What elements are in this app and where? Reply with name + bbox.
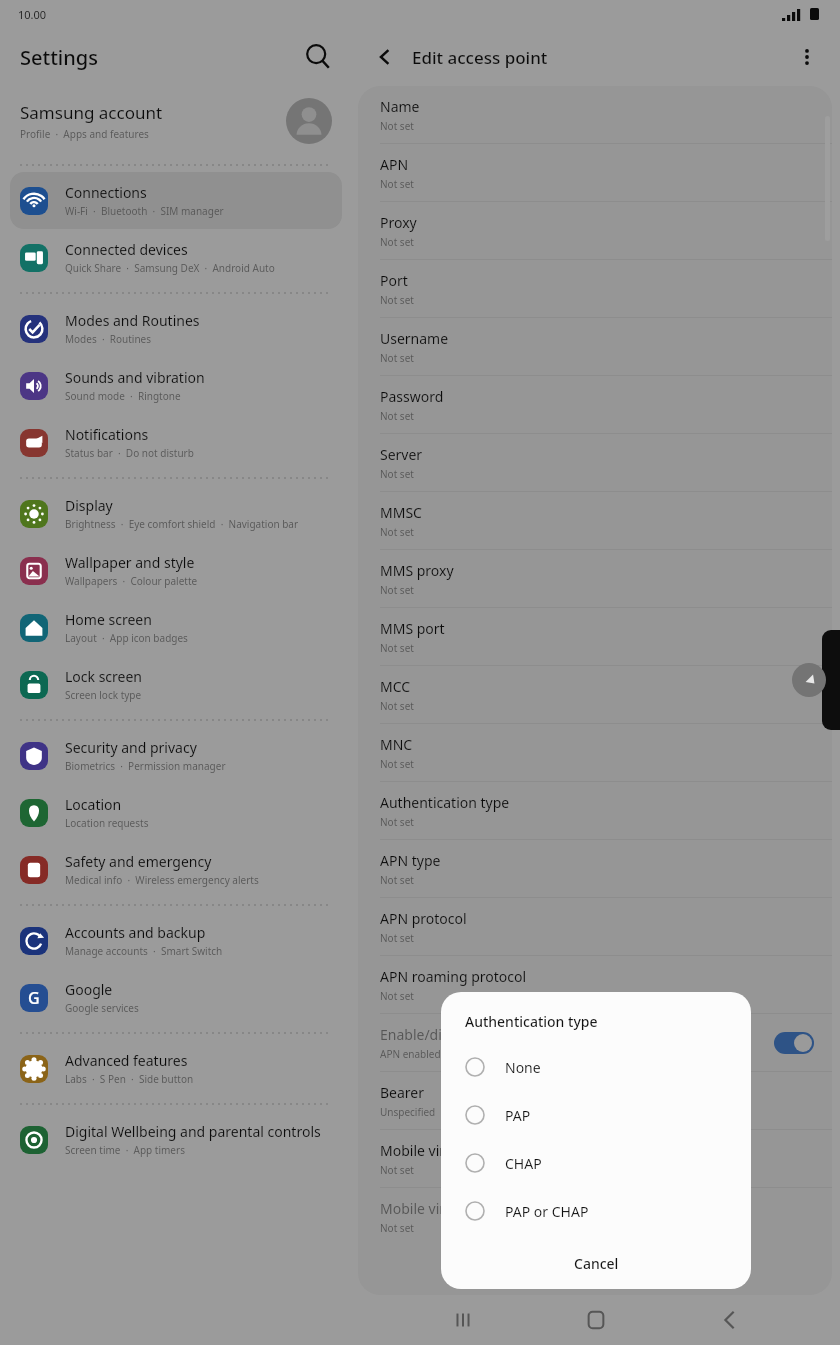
staticText: MNC (380, 735, 413, 754)
button[interactable]: MNC (358, 724, 832, 782)
staticText: Not set (380, 873, 414, 887)
staticText: Modes and Routines (65, 311, 200, 330)
staticText: Not set (380, 699, 414, 713)
button[interactable]: Back (368, 40, 402, 74)
staticText: G (28, 987, 40, 1009)
staticText: Location requests (65, 816, 149, 830)
staticText: 10.00 (18, 7, 47, 22)
button[interactable]: Port (358, 260, 832, 318)
staticText: Name (380, 97, 420, 116)
staticText: Modes · Routines (65, 332, 152, 346)
button[interactable]: Notifications (10, 414, 342, 471)
button[interactable]: Connected devices (10, 229, 342, 286)
staticText: Not set (380, 467, 414, 481)
staticText: Status bar · Do not disturb (65, 446, 194, 460)
staticText: Layout · App icon badges (65, 631, 188, 645)
button[interactable]: APN (358, 144, 832, 202)
staticText: PAP (505, 1106, 531, 1125)
button[interactable]: Mobile virtual network operator type (358, 1130, 832, 1188)
button[interactable]: PAP or CHAP (441, 1187, 751, 1235)
staticText: Wallpaper and style (65, 553, 195, 572)
staticText: Not set (380, 177, 414, 191)
button[interactable]: Connections (10, 172, 342, 229)
button[interactable]: APN roaming protocol (358, 956, 832, 1014)
staticText: Not set (380, 989, 414, 1003)
button[interactable]: Home (573, 1297, 619, 1343)
staticText: Username (380, 329, 449, 348)
button[interactable]: Sounds and vibration (10, 357, 342, 414)
button[interactable]: MMS proxy (358, 550, 832, 608)
button[interactable]: Password (358, 376, 832, 434)
staticText: Connected devices (65, 240, 188, 259)
button[interactable]: More options (790, 40, 824, 74)
button[interactable]: Security and privacy (10, 727, 342, 784)
staticText: APN (380, 155, 409, 174)
button[interactable]: Display (10, 485, 342, 542)
staticText: Not set (380, 119, 414, 133)
button[interactable]: None (441, 1043, 751, 1091)
staticText: Labs · S Pen · Side button (65, 1072, 194, 1086)
button[interactable]: Toggle APN (774, 1032, 814, 1054)
button[interactable]: CHAP (441, 1139, 751, 1187)
staticText: Authentication type (380, 793, 510, 812)
button[interactable]: Mobile virtual network operator value (358, 1188, 832, 1246)
staticText: Not set (380, 757, 414, 771)
button[interactable]: APN type (358, 840, 832, 898)
staticText: Not set (380, 1163, 414, 1177)
staticText: Cancel (574, 1254, 619, 1273)
button[interactable]: Safety and emergency (10, 841, 342, 898)
staticText: Advanced features (65, 1051, 188, 1070)
staticText: Bearer (380, 1083, 425, 1102)
staticText: Google services (65, 1001, 139, 1015)
button[interactable]: Recents (440, 1297, 486, 1343)
button[interactable]: Username (358, 318, 832, 376)
button[interactable]: Proxy (358, 202, 832, 260)
staticText: Unspecified (380, 1105, 436, 1119)
button[interactable]: MCC (358, 666, 832, 724)
button[interactable]: Back (707, 1297, 753, 1343)
staticText: Mobile virtual network operator type (380, 1141, 622, 1160)
staticText: APN roaming protocol (380, 967, 527, 986)
staticText: APN protocol (380, 909, 467, 928)
staticText: Biometrics · Permission manager (65, 759, 226, 773)
staticText: Not set (380, 525, 414, 539)
staticText: Settings (20, 44, 98, 71)
button[interactable]: Name (358, 86, 832, 144)
staticText: Proxy (380, 213, 417, 232)
staticText: MMS port (380, 619, 445, 638)
button[interactable]: Search (300, 39, 336, 75)
staticText: Display (65, 496, 113, 515)
button[interactable]: Wallpaper and style (10, 542, 342, 599)
button[interactable]: Accounts and backup (10, 912, 342, 969)
button[interactable]: Advanced features (10, 1040, 342, 1097)
staticText: Sounds and vibration (65, 368, 205, 387)
button[interactable]: Edge panel (822, 630, 840, 730)
button[interactable]: Authentication type (358, 782, 832, 840)
staticText: Not set (380, 641, 414, 655)
button[interactable]: Digital Wellbeing and parental controls (10, 1111, 342, 1168)
staticText: Not set (380, 583, 414, 597)
button[interactable]: Modes and Routines (10, 300, 342, 357)
button[interactable]: Server (358, 434, 832, 492)
staticText: MCC (380, 677, 411, 696)
button[interactable]: Lock screen (10, 656, 342, 713)
button[interactable]: Location (10, 784, 342, 841)
button[interactable]: Cancel (441, 1237, 751, 1289)
staticText: Password (380, 387, 444, 406)
button[interactable]: PAP (441, 1091, 751, 1139)
button[interactable]: Samsung account (0, 86, 352, 158)
button[interactable]: MMSC (358, 492, 832, 550)
staticText: Server (380, 445, 423, 464)
staticText: Security and privacy (65, 738, 197, 757)
staticText: Sound mode · Ringtone (65, 389, 181, 403)
staticText: Brightness · Eye comfort shield · Naviga… (65, 517, 299, 531)
staticText: Accounts and backup (65, 923, 206, 942)
button[interactable]: Home screen (10, 599, 342, 656)
button[interactable]: MMS port (358, 608, 832, 666)
button[interactable]: Enable/disable APN (358, 1014, 832, 1072)
staticText: Not set (380, 293, 414, 307)
button[interactable]: Bearer (358, 1072, 832, 1130)
staticText: Notifications (65, 425, 149, 444)
button[interactable]: G (20, 969, 332, 1026)
button[interactable]: APN protocol (358, 898, 832, 956)
